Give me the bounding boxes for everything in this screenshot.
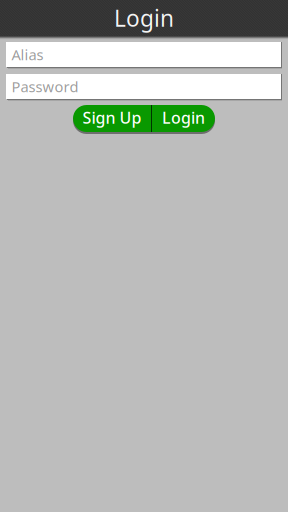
button[interactable]: Password: [6, 74, 282, 101]
staticText: Login: [114, 3, 174, 33]
staticText: Login: [162, 107, 205, 128]
button[interactable]: Alias: [6, 42, 282, 69]
button[interactable]: Sign Up: [73, 105, 151, 132]
staticText: Password: [11, 77, 78, 96]
staticText: Sign Up: [82, 107, 141, 128]
staticText: Alias: [11, 45, 43, 64]
button[interactable]: Login: [152, 105, 215, 132]
